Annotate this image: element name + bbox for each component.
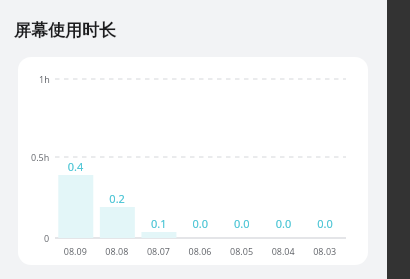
- button[interactable]: Screen time chart, last 7 days: [0, 0, 410, 279]
